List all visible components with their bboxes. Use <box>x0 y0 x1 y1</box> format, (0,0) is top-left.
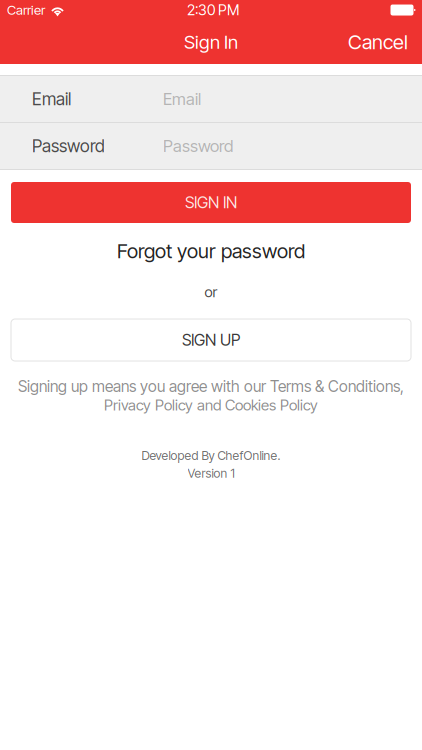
staticText: SIGN UP <box>182 330 240 350</box>
button[interactable]: SIGN UP <box>11 319 411 361</box>
staticText: Developed By ChefOnline. <box>141 448 280 463</box>
staticText: Privacy Policy and Cookies Policy <box>104 396 318 414</box>
staticText: Carrier <box>7 2 45 18</box>
button[interactable]: SIGN IN <box>11 182 411 223</box>
staticText: Cancel <box>348 30 408 54</box>
staticText: Email <box>32 88 71 109</box>
button[interactable]: Cancel <box>340 20 416 64</box>
staticText: Password <box>163 136 233 156</box>
staticText: 2:30 PM <box>187 1 239 19</box>
staticText: Signing up means you agree with our Term… <box>18 377 404 396</box>
staticText: Sign In <box>184 31 238 53</box>
button[interactable]: Forgot your password <box>0 241 422 261</box>
staticText: Email <box>163 89 201 109</box>
staticText: Version 1 <box>187 466 234 481</box>
staticText: or <box>204 283 217 301</box>
staticText: Password <box>32 135 105 156</box>
staticText: SIGN IN <box>185 193 237 212</box>
staticText: Forgot your password <box>117 239 305 263</box>
